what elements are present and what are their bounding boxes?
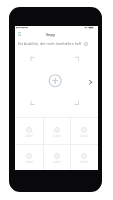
button[interactable]: Label [15,117,43,144]
staticText: Label [25,160,33,164]
button[interactable]: Label [43,144,71,171]
button[interactable]: Next [86,77,95,86]
button[interactable]: Snpy [39,31,63,37]
staticText: Label [53,134,61,138]
button[interactable]: Info [83,41,88,46]
staticText: Ein Ausblick, der mich innehalten ließ [18,41,81,46]
staticText: Label [25,134,33,138]
button[interactable]: Label [15,144,43,171]
staticText: Label [53,160,61,164]
button[interactable]: Add [49,75,62,88]
button[interactable]: Menu [16,31,22,37]
button[interactable]: Label [70,144,98,171]
staticText: Label [80,160,88,164]
staticText: Label [80,134,88,138]
button[interactable]: Label [43,117,71,144]
button[interactable]: Label [70,117,98,144]
staticText: Snpy [46,32,56,37]
